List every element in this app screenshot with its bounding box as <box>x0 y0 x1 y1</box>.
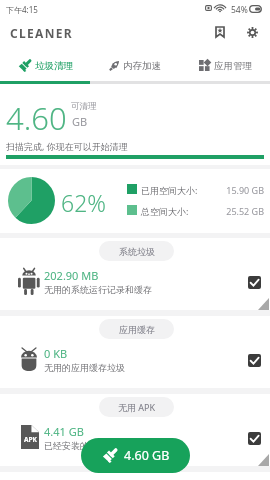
staticText: CLEANER <box>10 25 73 41</box>
staticText: 202.90 MB <box>44 268 99 283</box>
staticText: 扫描完成, 你现在可以开始清理 <box>6 140 128 152</box>
staticText: 4.60 GB <box>124 447 170 464</box>
staticText: 无用的应用缓存垃圾 <box>44 362 125 373</box>
button[interactable]: Select 系统垃圾 <box>243 271 265 293</box>
staticText: 25.52 GB <box>212 205 264 217</box>
button[interactable]: 应用缓存 <box>0 316 270 388</box>
staticText: 0 KB <box>44 346 68 361</box>
staticText: 内存加速 <box>123 60 161 72</box>
button[interactable]: Select 应用缓存 <box>243 349 265 371</box>
staticText: 无用的系统运行记录和缓存 <box>44 284 152 295</box>
button[interactable]: Select 无用 APK <box>243 427 265 449</box>
staticText: 垃圾清理 <box>35 60 73 72</box>
button[interactable]: Settings <box>240 20 264 44</box>
staticText: 无用 APK <box>118 401 156 413</box>
staticText: 可清理 <box>71 101 97 112</box>
staticText: 已用空间大小: <box>141 184 198 196</box>
staticText: 已经安装的安装包 <box>44 440 116 451</box>
staticText: 应用缓存 <box>119 324 155 335</box>
staticText: 54% <box>231 4 248 16</box>
button[interactable]: 垃圾清理 <box>0 50 90 81</box>
staticText: 4.41 GB <box>44 424 84 439</box>
staticText: 总空间大小: <box>141 205 189 217</box>
button[interactable]: 无用 APK <box>0 394 270 466</box>
staticText: APK <box>24 435 37 444</box>
button[interactable]: 应用管理 <box>180 50 270 81</box>
staticText: 应用管理 <box>214 60 252 72</box>
button[interactable]: 内存加速 <box>90 50 180 81</box>
staticText: 15.90 GB <box>212 184 264 196</box>
staticText: 系统垃圾 <box>119 246 155 257</box>
button[interactable]: Bookmarks <box>208 20 232 44</box>
staticText: 62% <box>61 187 106 218</box>
staticText: 4.60 <box>6 97 67 139</box>
staticText: GB <box>72 114 88 129</box>
button[interactable]: 4.60 GB <box>81 438 190 473</box>
button[interactable]: 系统垃圾 <box>0 238 270 310</box>
staticText: 下午4:15 <box>6 4 38 15</box>
